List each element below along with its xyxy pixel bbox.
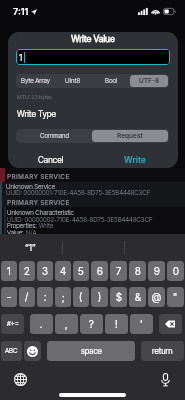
button[interactable]: Command [17,130,92,142]
staticText: UUID: 00000001-710E-4A58-8D75-3E5B4448C3… [6,189,151,197]
button[interactable]: 1 [16,49,170,65]
button[interactable]: Write [93,152,178,168]
button[interactable]: Dictation [157,371,173,387]
button[interactable]: #+= [1,314,24,334]
staticText: : [44,291,47,303]
staticText: Bool [105,77,118,85]
button[interactable]: 0 [167,261,184,281]
staticText: 5 [78,265,84,277]
staticText: PRIMARY SERVICE [7,199,70,207]
staticText: UUID: 00000002-710E-4A58-8D75-3E5B4448C3… [7,216,153,224]
staticText: ' [140,318,143,330]
staticText: “1” [25,242,36,253]
staticText: UInt8 [65,77,81,85]
button[interactable]: ! [105,314,128,334]
button[interactable]: Byte Array [17,75,54,87]
staticText: Command [40,132,70,140]
staticText: Value: [7,229,26,237]
button[interactable]: " [167,287,184,307]
staticText: Write [39,222,54,230]
button[interactable]: & [129,287,146,307]
button[interactable]: . [30,314,53,334]
button[interactable]: ? [80,314,103,334]
button[interactable]: $ [110,287,127,307]
button[interactable]: Change keyboard [12,371,28,387]
staticText: Properties: [7,222,39,230]
staticText: ; [62,291,65,303]
staticText: - [7,291,12,303]
button[interactable]: “1” [0,234,61,260]
button[interactable]: ' [130,314,153,334]
staticText: Cancel [38,155,64,165]
staticText: , [65,318,68,330]
button[interactable]: - [1,287,17,307]
staticText: ) [98,291,102,303]
staticText: / [25,291,29,303]
button[interactable]: Unknown Service [0,182,185,207]
button[interactable]: Emoji [24,341,41,361]
staticText: 7:11 [13,6,29,17]
button[interactable]: 5 [73,261,89,281]
button[interactable]: ABC [1,341,22,361]
staticText: ABC [5,347,18,355]
button[interactable]: , [55,314,78,334]
staticText: ? [89,318,94,330]
button[interactable]: @ [148,287,165,307]
button[interactable]: Bool [92,75,130,87]
button[interactable]: space [47,341,135,361]
staticText: 8 [135,265,141,277]
button[interactable]: UInt8 [54,75,92,87]
staticText: #+= [7,320,19,328]
button[interactable]: 2 [19,261,35,281]
staticText: space [81,346,102,356]
button[interactable]: Backspace [159,314,182,334]
staticText: 1 [7,265,11,277]
staticText: 6 [97,265,103,277]
staticText: Write Value [8,33,178,44]
button[interactable]: UTF-8 [130,75,168,87]
staticText: Write [124,155,147,165]
staticText: . [40,318,43,330]
button[interactable]: return [141,341,184,361]
button[interactable]: 1 [1,261,17,281]
button[interactable]: : [37,287,53,307]
button[interactable]: 3 [37,261,53,281]
button[interactable]: Unknown Characteristic [0,207,185,234]
staticText: @ [152,291,161,303]
staticText: & [135,291,141,303]
staticText: N/A [26,229,37,237]
button[interactable]: ; [55,287,71,307]
staticText: Write Type [17,109,57,119]
staticText: ( [79,291,83,303]
staticText: 4 [60,265,66,277]
staticText: PRIMARY SERVICE [7,173,70,181]
button[interactable]: Cancel [8,152,93,168]
staticText: UTF-8 [139,77,160,85]
button[interactable]: 7 [110,261,127,281]
staticText: 3 [42,265,48,277]
staticText: Request [117,132,143,140]
staticText: Byte Array [21,77,51,85]
staticText: " [173,291,178,303]
staticText: 7 [116,265,122,277]
button[interactable]: 9 [148,261,165,281]
staticText: 0 [173,265,179,277]
button[interactable]: 4 [55,261,71,281]
button[interactable]: ) [91,287,108,307]
staticText: 2 [24,265,30,277]
button[interactable]: Request [92,130,168,142]
staticText: 9 [154,265,160,277]
staticText: return [152,346,173,356]
button[interactable]: / [19,287,35,307]
staticText: MTU: 23 bytes [17,94,52,101]
staticText: 1 [19,52,23,63]
button[interactable]: ( [73,287,89,307]
staticText: $ [116,291,122,303]
button[interactable]: 8 [129,261,146,281]
staticText: Unknown Characteristic [7,209,74,217]
staticText: Unknown Service [6,183,56,191]
staticText: ! [115,318,118,330]
button[interactable]: 6 [91,261,108,281]
